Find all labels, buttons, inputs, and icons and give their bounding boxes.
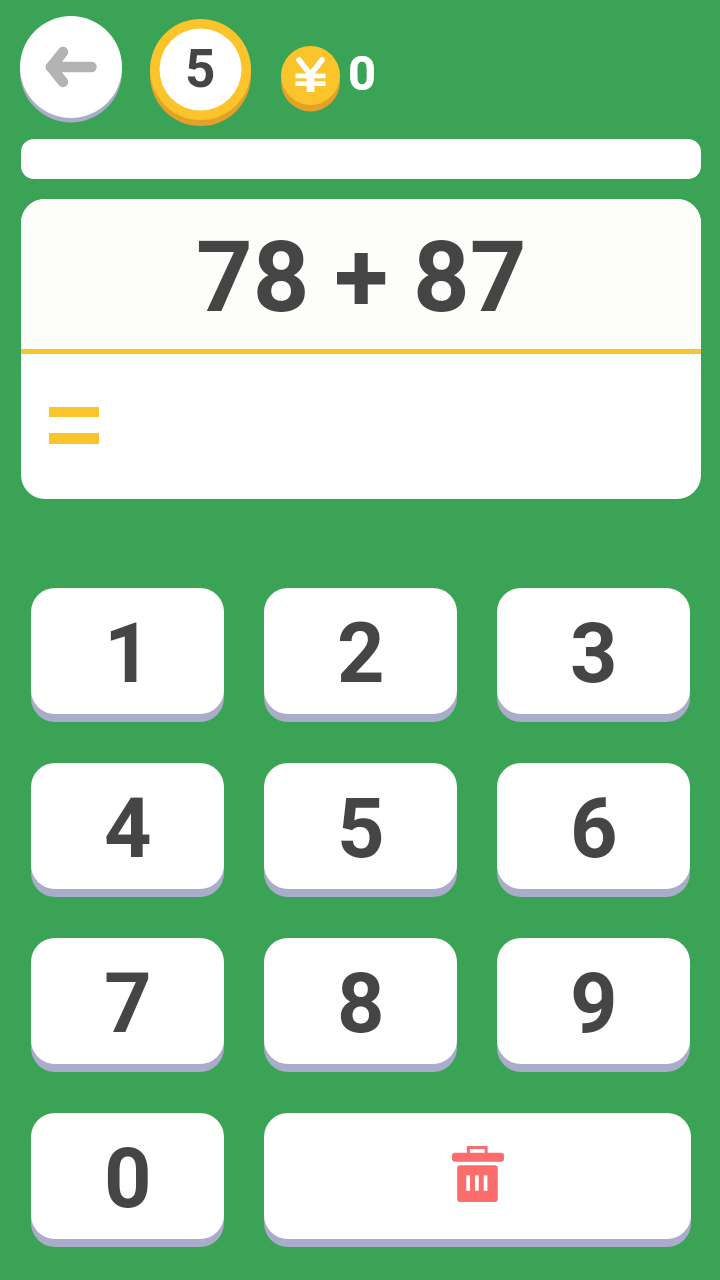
button[interactable]: 9	[497, 938, 690, 1072]
button[interactable]: 3	[497, 588, 690, 722]
staticText: 9	[570, 955, 618, 1052]
button[interactable]: 8	[264, 938, 457, 1072]
staticText: 0	[348, 45, 377, 102]
button[interactable]: 5	[150, 19, 251, 127]
staticText: 7	[104, 955, 152, 1052]
button[interactable]: 7	[31, 938, 224, 1072]
button[interactable]: 1	[31, 588, 224, 722]
staticText: 1	[104, 605, 152, 702]
staticText: 0	[104, 1130, 152, 1227]
staticText: 4	[104, 780, 152, 877]
staticText: 5	[185, 38, 216, 100]
staticText: 6	[570, 780, 618, 877]
staticText: 5	[337, 780, 385, 877]
staticText: 78 + 87	[196, 219, 527, 335]
button[interactable]: 4	[31, 763, 224, 897]
staticText: 8	[337, 955, 385, 1052]
button[interactable]: Delete	[264, 1113, 691, 1247]
button[interactable]: 6	[497, 763, 690, 897]
staticText: 3	[570, 605, 618, 702]
button[interactable]: 2	[264, 588, 457, 722]
button[interactable]: 0	[31, 1113, 224, 1247]
staticText: 2	[337, 605, 385, 702]
button[interactable]: Back	[19, 16, 125, 122]
button[interactable]: 5	[264, 763, 457, 897]
